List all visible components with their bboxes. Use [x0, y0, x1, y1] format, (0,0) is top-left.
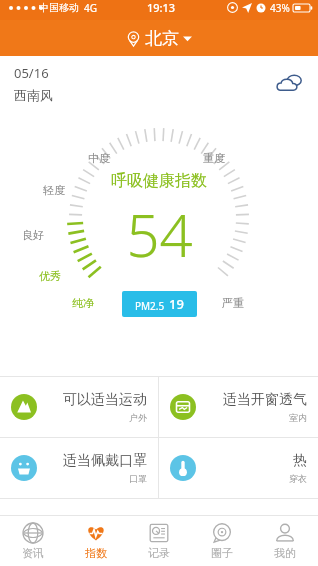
staticText: PM2.5	[135, 299, 165, 313]
staticText: 口罩	[129, 473, 147, 484]
staticText: 我的	[274, 546, 296, 560]
button[interactable]: 热	[159, 438, 318, 498]
staticText: 19	[169, 295, 184, 313]
button[interactable]: 适当开窗透气	[159, 377, 318, 437]
staticText: 呼吸健康指数	[111, 171, 207, 191]
staticText: 适当开窗透气	[223, 391, 307, 409]
staticText: 良好	[22, 228, 44, 242]
button[interactable]: 资讯	[3, 515, 63, 566]
staticText: 记录	[148, 546, 170, 560]
staticText: 可以适当运动	[63, 391, 147, 409]
staticText: 西南风	[14, 87, 53, 103]
staticText: 纯净	[72, 296, 94, 310]
staticText: 中国移动	[39, 1, 79, 14]
staticText: 严重	[222, 296, 244, 310]
staticText: 穿衣	[289, 473, 307, 484]
staticText: 适当佩戴口罩	[63, 452, 147, 470]
staticText: 4G	[84, 1, 97, 15]
staticText: 圈子	[211, 546, 233, 560]
staticText: 北京	[145, 28, 179, 49]
staticText: 室内	[289, 412, 307, 423]
staticText: 轻度	[43, 183, 65, 197]
staticText: 指数	[85, 546, 107, 560]
button[interactable]: 适当佩戴口罩	[0, 438, 158, 498]
staticText: 户外	[129, 412, 147, 423]
other: Weather cloudy	[276, 73, 304, 95]
button[interactable]: PM2.5	[122, 291, 197, 317]
staticText: 54	[126, 195, 193, 274]
button[interactable]: 北京	[0, 20, 318, 56]
button[interactable]: 可以适当运动	[0, 377, 158, 437]
staticText: 热	[293, 452, 307, 470]
staticText: 19:13	[147, 0, 176, 15]
staticText: 05/16	[14, 64, 49, 82]
button[interactable]: 我的	[255, 515, 315, 566]
staticText: 重度	[203, 151, 225, 165]
staticText: 资讯	[22, 546, 44, 560]
staticText: 优秀	[39, 269, 61, 283]
button[interactable]: 圈子	[192, 515, 252, 566]
button[interactable]: 指数	[66, 515, 126, 566]
staticText: 43%	[270, 1, 290, 15]
staticText: 中度	[88, 151, 110, 165]
button[interactable]: 记录	[129, 515, 189, 566]
